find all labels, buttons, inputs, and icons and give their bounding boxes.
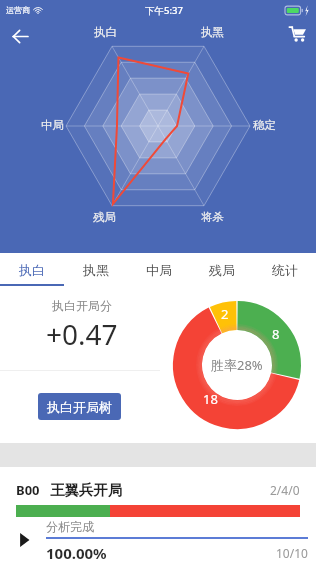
staticText: 执黑 (83, 262, 109, 278)
button[interactable]: 执黑 (64, 253, 127, 286)
staticText: 胜率28% (211, 356, 263, 374)
staticText: 分析完成 (46, 519, 94, 534)
staticText: 下午5:37 (145, 4, 183, 17)
staticText: 18 (203, 390, 218, 408)
staticText: 中局 (146, 262, 172, 278)
button[interactable]: 残局 (190, 253, 253, 286)
staticText: 统计 (272, 262, 298, 278)
staticText: 10/10 (276, 545, 308, 561)
staticText: 8 (272, 325, 280, 343)
staticText: 王翼兵开局 (50, 481, 123, 499)
button[interactable]: Play analysis (10, 527, 38, 553)
staticText: 执白 (19, 262, 45, 278)
staticText: 残局 (209, 262, 235, 278)
staticText: 2 (221, 305, 229, 323)
staticText: +0.47 (46, 315, 118, 353)
button[interactable]: Shopping cart (281, 17, 313, 49)
staticText: 运营商 (6, 5, 30, 15)
button[interactable]: 执白开局树 (38, 393, 121, 420)
staticText: 将杀 (201, 210, 224, 224)
staticText: 执白开局树 (47, 399, 112, 415)
button[interactable] (0, 467, 316, 562)
staticText: 残局 (93, 210, 116, 224)
button[interactable]: Back (4, 20, 36, 52)
button[interactable]: 中局 (127, 253, 190, 286)
staticText: 执白 (94, 25, 117, 39)
staticText: 2/4/0 (270, 482, 300, 498)
staticText: 执白开局分 (52, 298, 112, 313)
staticText: 100.00% (46, 543, 107, 562)
staticText: 稳定 (253, 118, 276, 132)
staticText: 执黑 (201, 25, 224, 39)
button[interactable]: 执白 (0, 253, 64, 286)
button[interactable]: 统计 (253, 253, 316, 286)
staticText: B00 (16, 481, 40, 499)
staticText: 中局 (41, 118, 64, 132)
